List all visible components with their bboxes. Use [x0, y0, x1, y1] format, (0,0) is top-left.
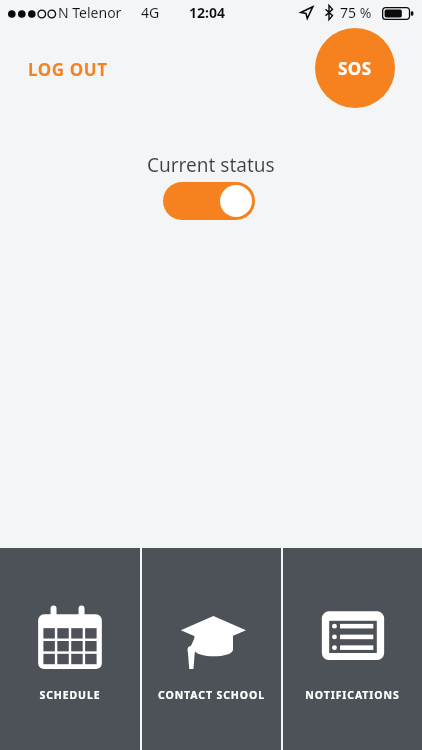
staticText: Current status — [147, 152, 275, 178]
button[interactable]: CONTACT SCHOOL — [142, 548, 281, 750]
staticText: NOTIFICATIONS — [305, 688, 400, 702]
button[interactable]: Current status toggle, on — [163, 182, 255, 220]
staticText: SCHEDULE — [39, 688, 101, 702]
staticText: N Telenor — [58, 3, 122, 22]
button[interactable]: LOG OUT — [27, 55, 109, 84]
button[interactable]: SOS emergency — [315, 28, 395, 108]
staticText: CONTACT SCHOOL — [158, 688, 265, 702]
staticText: 4G — [141, 3, 160, 22]
staticText: 12:04 — [189, 3, 225, 22]
staticText: 75 % — [340, 3, 372, 22]
staticText: SOS — [338, 57, 372, 80]
button[interactable]: SCHEDULE — [0, 548, 140, 750]
staticText: LOG OUT — [28, 58, 108, 81]
button[interactable]: NOTIFICATIONS — [283, 548, 422, 750]
